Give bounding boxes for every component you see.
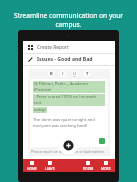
other: Edit	[28, 57, 33, 62]
staticText: - Peter scored 100% on his math test	[34, 94, 104, 106]
staticText: The dorm was quiet tonight and	[33, 117, 95, 123]
staticText: ROOM	[83, 166, 94, 170]
staticText: today!	[34, 107, 46, 113]
button[interactable]: I	[60, 71, 66, 77]
staticText: MORE	[101, 166, 111, 170]
staticText: HOME	[27, 166, 37, 170]
staticText: LEAVE	[45, 166, 55, 170]
staticText: B	[50, 71, 53, 77]
staticText: everyone was working hard!	[33, 123, 88, 129]
button[interactable]: ROOM	[79, 159, 97, 172]
button[interactable]: LEAVE	[41, 159, 59, 172]
staticText: Please report on any positive or bad mat…	[31, 149, 105, 154]
staticText: T	[86, 71, 89, 77]
other: Menu	[28, 45, 33, 50]
staticText: U	[73, 71, 77, 77]
button[interactable]: U	[72, 71, 78, 77]
staticText: Create Report	[37, 44, 69, 51]
button[interactable]: B	[48, 71, 54, 77]
button[interactable]: HOME	[23, 159, 41, 172]
button[interactable]: MORE	[97, 159, 115, 172]
staticText: Streamline communication on your campus.	[4, 11, 133, 29]
staticText: @ Fillman, Peter -- Academic (Positive)	[34, 81, 104, 93]
button[interactable]: Attachment	[99, 138, 105, 144]
button[interactable]: Menu	[23, 41, 115, 53]
button[interactable]: Edit	[23, 54, 115, 65]
staticText: Issues - Good and Bad	[37, 56, 93, 63]
button[interactable]: T	[84, 71, 90, 77]
button[interactable]: Add report	[59, 136, 78, 155]
staticText: I	[62, 71, 64, 77]
